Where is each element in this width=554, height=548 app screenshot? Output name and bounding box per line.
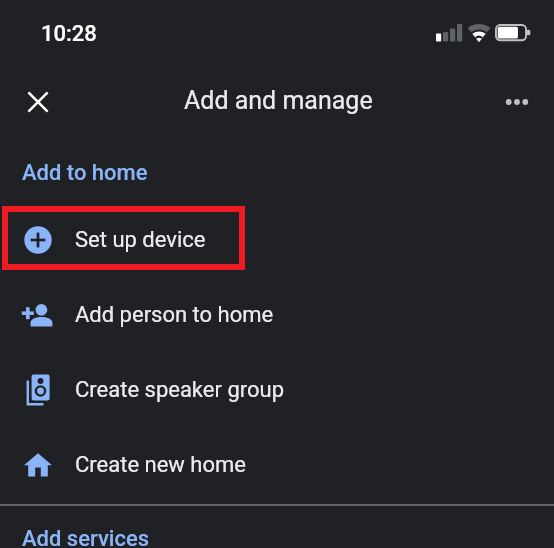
button[interactable]: Create new home [0, 429, 554, 501]
button[interactable]: Add person to home [0, 279, 554, 351]
staticText: Add and manage [184, 86, 373, 115]
staticText: Add services [22, 526, 150, 548]
button[interactable]: Create speaker group [0, 354, 554, 426]
staticText: Add person to home [75, 302, 274, 328]
staticText: Create new home [75, 452, 246, 478]
staticText: Create speaker group [75, 377, 284, 403]
button[interactable]: Close [14, 78, 61, 125]
button[interactable]: More options [493, 78, 540, 125]
button[interactable]: Set up device [0, 204, 554, 276]
staticText: 10:28 [41, 21, 97, 47]
staticText: Set up device [75, 227, 206, 253]
staticText: Add to home [22, 160, 148, 186]
